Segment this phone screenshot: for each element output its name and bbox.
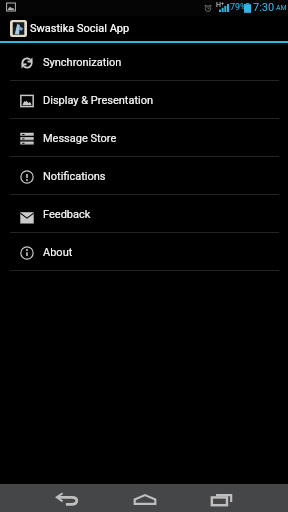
staticText: H bbox=[216, 1, 221, 9]
button[interactable]: Back bbox=[42, 484, 91, 512]
button[interactable]: Notifications bbox=[0, 157, 288, 194]
button[interactable]: About bbox=[0, 233, 288, 270]
button[interactable]: Synchronization bbox=[0, 43, 288, 80]
staticText: 7:30 bbox=[253, 1, 275, 14]
button[interactable]: Display & Presentation bbox=[0, 81, 288, 118]
button[interactable]: Feedback bbox=[0, 195, 288, 232]
staticText: Swastika Social App bbox=[30, 22, 130, 35]
button[interactable]: Home bbox=[120, 484, 169, 512]
staticText: AM bbox=[276, 4, 287, 12]
staticText: About bbox=[43, 246, 73, 259]
staticText: Message Store bbox=[43, 132, 117, 145]
staticText: + bbox=[221, 0, 224, 6]
staticText: Display & Presentation bbox=[43, 94, 154, 107]
staticText: 79% bbox=[230, 2, 247, 13]
staticText: Feedback bbox=[43, 208, 91, 221]
button[interactable]: Message Store bbox=[0, 119, 288, 156]
staticText: Notifications bbox=[43, 170, 106, 183]
staticText: Synchronization bbox=[43, 56, 122, 69]
button[interactable]: Recent apps bbox=[197, 484, 246, 512]
